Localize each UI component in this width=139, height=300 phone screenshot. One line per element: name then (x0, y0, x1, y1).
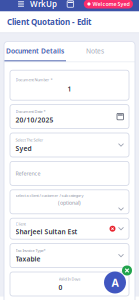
button[interactable]: Close assistant (122, 265, 132, 275)
button[interactable]: Notes (66, 41, 124, 61)
staticText: Welcome Syed (92, 0, 129, 8)
staticText: Select The Seller (15, 137, 43, 142)
staticText: Document Details (6, 46, 64, 55)
button[interactable]: Assistant (104, 271, 126, 293)
staticText: (optional) (58, 199, 81, 206)
staticText: A (111, 275, 118, 290)
button[interactable]: Welcome Syed (84, 0, 133, 8)
staticText: Syed (15, 144, 31, 153)
staticText: Taxable (15, 255, 40, 263)
staticText: 0 (58, 283, 62, 292)
staticText: 20/10/2025 (15, 116, 53, 124)
staticText: select a client / customer / sub categor… (15, 193, 83, 198)
staticText: Valid In Days (58, 276, 80, 281)
staticText: WrkUp (30, 0, 57, 9)
staticText: 1 (67, 84, 71, 93)
button[interactable]: Menu (14, 0, 28, 11)
staticText: Document Number * (15, 77, 52, 82)
button[interactable]: Clear client (109, 226, 115, 232)
staticText: Client (15, 221, 25, 227)
staticText: Sharjeel Sultan Est (15, 227, 77, 236)
button[interactable]: Calendar (64, 0, 76, 11)
staticText: Tax Invoice Type* (15, 248, 45, 253)
staticText: Client Quotation - Edit (7, 17, 91, 27)
staticText: Notes (86, 46, 104, 55)
button[interactable]: Document Details (4, 41, 66, 61)
staticText: Document Date * (15, 109, 45, 114)
staticText: Reference (15, 170, 40, 177)
